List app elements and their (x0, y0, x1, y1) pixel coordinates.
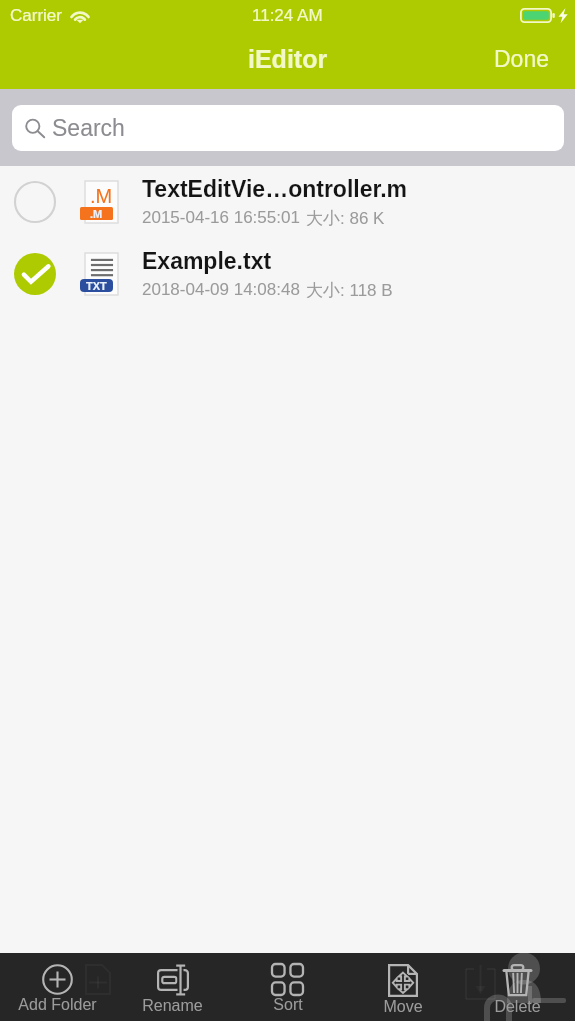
button[interactable]: Move (345, 953, 460, 1021)
staticText: Move (383, 998, 423, 1016)
staticText: 2018-04-09 14:08:48 (142, 280, 300, 299)
staticText: 大小: 118 B (306, 280, 393, 301)
staticText: Delete (494, 998, 541, 1016)
staticText: .M (90, 208, 103, 220)
staticText: Sort (273, 996, 303, 1014)
button[interactable]: Add Folder (0, 953, 115, 1021)
staticText: 11:24 AM (252, 6, 323, 25)
staticText: iEditor (248, 45, 328, 73)
staticText: Search (52, 115, 125, 141)
staticText: Rename (142, 997, 203, 1015)
button[interactable]: Search (12, 105, 564, 151)
button[interactable]: Rename (115, 953, 230, 1021)
button[interactable]: Done (476, 37, 575, 83)
staticText: Done (494, 46, 549, 72)
staticText: TextEditVie…ontroller.m (142, 176, 407, 202)
staticText: .M (90, 185, 113, 207)
staticText: 大小: 86 K (306, 208, 385, 229)
button[interactable]: Sort (230, 953, 345, 1021)
button[interactable]: Not selected (0, 166, 575, 238)
staticText: 2015-04-16 16:55:01 (142, 208, 300, 227)
other: Not selected (14, 181, 56, 223)
button[interactable]: Selected (0, 238, 575, 310)
other: Selected (14, 253, 56, 295)
button[interactable]: Delete (460, 953, 575, 1021)
staticText: Example.txt (142, 248, 272, 274)
staticText: Carrier (10, 6, 62, 25)
staticText: Add Folder (18, 996, 97, 1014)
staticText: TXT (86, 280, 107, 292)
